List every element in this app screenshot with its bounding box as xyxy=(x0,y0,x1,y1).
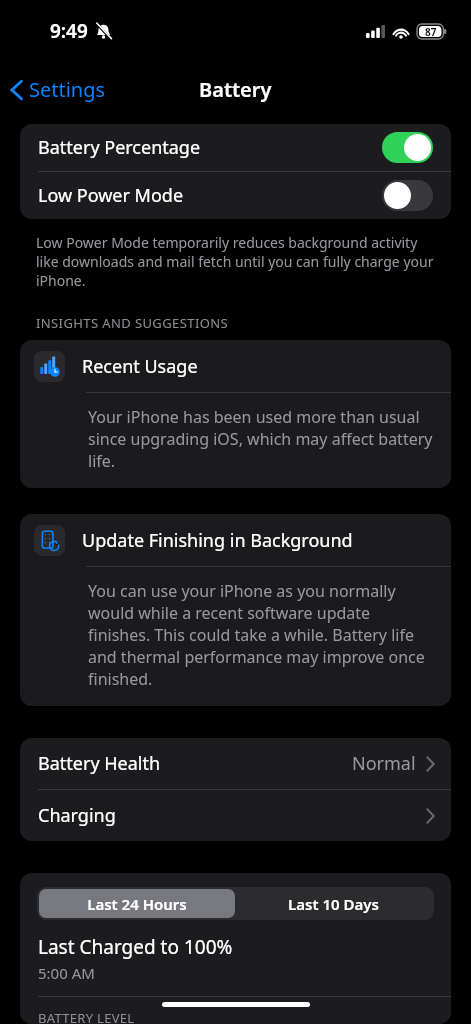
staticText: Battery Percentage xyxy=(38,135,382,160)
button[interactable]: Update Finishing in Background xyxy=(20,514,451,706)
button[interactable]: Charging xyxy=(20,790,451,841)
staticText: BATTERY LEVEL xyxy=(38,1009,135,1024)
staticText: Recent Usage xyxy=(82,354,198,379)
staticText: Last 10 Days xyxy=(288,894,379,914)
staticText: Normal xyxy=(352,751,416,776)
button[interactable]: Last 10 Days xyxy=(235,889,432,918)
button[interactable]: Last 24 Hours xyxy=(39,889,235,918)
staticText: 5:00 AM xyxy=(38,963,95,983)
button[interactable]: Low Power Mode xyxy=(20,172,451,219)
staticText: 9:49 xyxy=(50,18,88,44)
button[interactable]: Recent Usage xyxy=(20,340,451,488)
button[interactable]: Settings xyxy=(0,70,114,109)
staticText: 87 xyxy=(425,25,437,39)
staticText: Update Finishing in Background xyxy=(82,528,353,553)
staticText: Battery xyxy=(199,76,272,103)
button[interactable]: Low Power Mode xyxy=(382,180,433,211)
button[interactable]: Battery Percentage xyxy=(382,132,433,163)
button[interactable]: Battery Health xyxy=(20,738,451,789)
staticText: Battery Health xyxy=(38,751,352,776)
button[interactable]: Battery Percentage xyxy=(20,124,451,171)
staticText: Settings xyxy=(29,76,106,103)
staticText: Charging xyxy=(38,803,426,828)
staticText: Last Charged to 100% xyxy=(38,934,233,960)
staticText: INSIGHTS AND SUGGESTIONS xyxy=(36,314,229,332)
staticText: Last 24 Hours xyxy=(87,894,187,914)
staticText: Low Power Mode xyxy=(38,183,382,208)
staticText: Your iPhone has been used more than usua… xyxy=(88,406,435,472)
staticText: Low Power Mode temporarily reduces backg… xyxy=(36,233,437,290)
staticText: You can use your iPhone as you normally … xyxy=(88,580,435,690)
